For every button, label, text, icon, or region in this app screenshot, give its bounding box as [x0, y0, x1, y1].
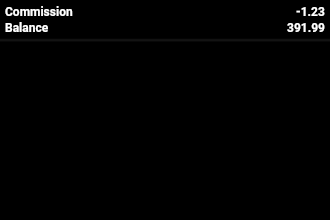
button[interactable]: Balance: [0, 20, 330, 36]
button[interactable]: Commission: [0, 4, 330, 20]
staticText: Commission: [5, 5, 73, 19]
staticText: 391.99: [287, 21, 325, 35]
staticText: Balance: [5, 21, 49, 35]
staticText: -1.23: [296, 5, 325, 19]
other: Account summary separator: [0, 0, 330, 220]
